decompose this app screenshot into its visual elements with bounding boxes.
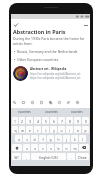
- staticText: h: [57, 137, 60, 141]
- button[interactable]: Text edit: [65, 99, 72, 106]
- staticText: .: [71, 155, 72, 159]
- staticText: 4: [37, 119, 39, 123]
- staticText: 3: [29, 119, 31, 123]
- staticText: d: [33, 137, 36, 141]
- staticText: English (US): [39, 155, 58, 159]
- staticText: y: [53, 128, 55, 132]
- button[interactable]: 5: [42, 117, 49, 124]
- button[interactable]: b: [55, 144, 62, 151]
- staticText: a: [18, 137, 20, 141]
- button[interactable]: y: [50, 126, 57, 133]
- staticText: p: [84, 128, 87, 132]
- button[interactable]: q: [12, 126, 18, 133]
- button[interactable]: Clipboard: [38, 99, 45, 106]
- staticText: j: [66, 137, 67, 141]
- staticText: e: [29, 128, 31, 132]
- button[interactable]: .: [67, 153, 75, 160]
- staticText: t: [45, 128, 47, 132]
- button[interactable]: r: [34, 126, 41, 133]
- staticText: artists from:: [13, 41, 33, 46]
- button[interactable]: e: [26, 126, 33, 133]
- button[interactable]: Theme: [56, 99, 63, 106]
- button[interactable]: z: [23, 144, 30, 151]
- staticText: https://en.wikipedia.org/wiki/Abstract_a…: [30, 76, 81, 80]
- staticText: v: [50, 146, 52, 150]
- button[interactable]: counties: [64, 108, 90, 115]
- staticText: x: [34, 146, 36, 150]
- staticText: s: [26, 137, 28, 141]
- staticText: 8: [69, 119, 71, 123]
- button[interactable]: countries: [11, 108, 38, 115]
- button[interactable]: 4: [34, 117, 41, 124]
- button[interactable]: n: [63, 144, 70, 151]
- button[interactable]: !#1: [12, 153, 21, 160]
- button[interactable]: o: [74, 126, 81, 133]
- staticText: 2: [21, 119, 23, 123]
- staticText: 5: [45, 119, 47, 123]
- button[interactable]: i: [66, 126, 73, 133]
- button[interactable]: c: [39, 144, 46, 151]
- staticText: r: [37, 128, 39, 132]
- button[interactable]: a: [15, 135, 22, 142]
- staticText: 1: [14, 119, 16, 123]
- button[interactable]: Abstract art - Wikipedia: [13, 66, 90, 81]
- button[interactable]: Done: [76, 153, 89, 160]
- staticText: Abstraction in Paris: [13, 28, 66, 35]
- button[interactable]: v: [47, 144, 54, 151]
- button[interactable]: j: [63, 135, 70, 142]
- staticText: Russia, Germany and the Netherlands: [17, 49, 78, 54]
- button[interactable]: k: [71, 135, 78, 142]
- staticText: 6: [53, 119, 55, 123]
- staticText: b: [57, 146, 60, 150]
- button[interactable]: Sticker: [29, 99, 36, 106]
- button[interactable]: Translate: [47, 99, 54, 106]
- staticText: z: [26, 146, 28, 150]
- staticText: l: [82, 137, 83, 141]
- button[interactable]: 3: [26, 117, 33, 124]
- button[interactable]: English (US): [31, 153, 66, 160]
- staticText: c: [42, 146, 44, 150]
- button[interactable]: More options: [82, 21, 90, 29]
- button[interactable]: l: [79, 135, 86, 142]
- staticText: https://en.wikipedia.org/wiki/Abstract_a…: [30, 72, 81, 76]
- button[interactable]: d: [31, 135, 38, 142]
- button[interactable]: f: [39, 135, 46, 142]
- staticText: w: [21, 128, 24, 132]
- button[interactable]: p: [82, 126, 89, 133]
- button[interactable]: 2: [19, 117, 25, 124]
- staticText: f: [42, 137, 44, 141]
- button[interactable]: 1: [12, 117, 18, 124]
- button[interactable]: Settings: [74, 99, 81, 106]
- button[interactable]: s: [23, 135, 30, 142]
- staticText: Other European countries: [17, 57, 59, 62]
- button[interactable]: t: [42, 126, 49, 133]
- staticText: u: [60, 128, 63, 132]
- staticText: 9: [77, 119, 79, 123]
- button[interactable]: 8: [66, 117, 73, 124]
- button[interactable]: x: [31, 144, 38, 151]
- button[interactable]: Backspace: [79, 144, 89, 151]
- button[interactable]: h: [55, 135, 62, 142]
- button[interactable]: g: [47, 135, 54, 142]
- staticText: m: [73, 146, 77, 150]
- button[interactable]: 9: [74, 117, 81, 124]
- staticText: i: [69, 128, 70, 132]
- staticText: k: [74, 137, 76, 141]
- staticText: q: [14, 128, 17, 132]
- button[interactable]: ,: [22, 153, 30, 160]
- button[interactable]: Shift: [12, 144, 22, 151]
- button[interactable]: 6: [50, 117, 57, 124]
- staticText: countries: [18, 110, 31, 114]
- button[interactable]: countries: [38, 108, 64, 115]
- button[interactable]: Done: [12, 21, 20, 29]
- button[interactable]: 0: [82, 117, 89, 124]
- button[interactable]: m: [71, 144, 78, 151]
- button[interactable]: u: [58, 126, 65, 133]
- staticText: n: [65, 146, 68, 150]
- button[interactable]: GIF: [20, 99, 27, 106]
- staticText: counties: [71, 110, 83, 114]
- button[interactable]: 7: [58, 117, 65, 124]
- button[interactable]: w: [19, 126, 25, 133]
- button[interactable]: Search: [11, 99, 18, 106]
